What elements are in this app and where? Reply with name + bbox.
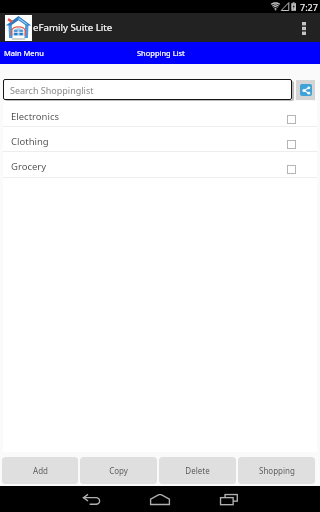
button[interactable]: Clothing	[3, 127, 317, 151]
button[interactable]: Grocery	[3, 152, 317, 177]
button[interactable]: More options	[296, 13, 311, 42]
staticText: Clothing	[11, 135, 49, 148]
staticText: Shopping List	[137, 48, 185, 58]
button[interactable]: Share	[296, 80, 315, 100]
staticText: Copy	[109, 465, 128, 476]
staticText: Electronics	[11, 110, 59, 123]
staticText: Shopping	[259, 465, 295, 476]
staticText: Grocery	[11, 160, 47, 173]
button[interactable]: Home	[145, 487, 175, 512]
button[interactable]: Search Shoppinglist	[3, 79, 292, 100]
button[interactable]: Electronics	[3, 103, 317, 126]
staticText: Main Menu	[4, 48, 44, 58]
button[interactable]: Shopping List	[130, 42, 200, 64]
button[interactable]: Copy	[80, 457, 157, 484]
button[interactable]: Recent apps	[214, 487, 244, 512]
staticText: Search Shoppinglist	[10, 84, 94, 96]
button[interactable]: Add	[2, 457, 78, 484]
staticText: eFamily Suite Lite	[33, 21, 113, 34]
button[interactable]: Main Menu	[0, 42, 120, 64]
staticText: Delete	[185, 465, 210, 476]
button[interactable]: Back	[77, 487, 107, 512]
staticText: 7:27	[300, 1, 318, 13]
button[interactable]: Shopping	[238, 457, 315, 484]
button[interactable]: Delete	[159, 457, 236, 484]
staticText: Add	[33, 465, 48, 476]
